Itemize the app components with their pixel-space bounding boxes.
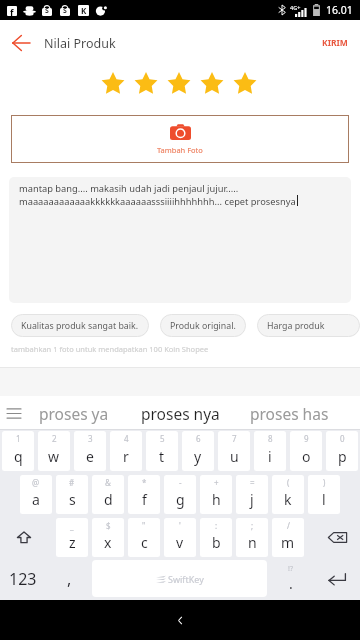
staticText: 5 [160,433,165,444]
staticText: c [141,533,148,552]
staticText: a [32,490,40,509]
button[interactable]: Rating star [96,70,129,96]
staticText: S [63,6,67,16]
staticText: 4G+ [290,4,301,11]
staticText: 8 [268,433,273,444]
staticText: h [212,490,221,509]
button[interactable]: ; [236,518,268,557]
button[interactable]: 2 [38,431,70,471]
staticText: 9 [304,433,309,444]
staticText: x [104,533,112,552]
button[interactable]: proses nya [141,396,220,430]
staticText: p [338,447,347,466]
staticText: KIRIM [322,37,348,49]
staticText: 4 [124,433,129,444]
button[interactable]: Keyboard menu [3,402,25,424]
staticText: Kualitas produk sangat baik. [21,320,139,332]
button[interactable]: Space [92,560,267,597]
staticText: k [284,490,292,509]
staticText: y [194,447,202,466]
button[interactable]: 9 [290,431,322,471]
staticText: l [322,490,326,509]
button[interactable]: Rating star [129,70,162,96]
button[interactable]: Enter [314,559,360,598]
button[interactable]: @ [20,475,52,514]
button[interactable]: 5 [146,431,178,471]
staticText: w [48,447,60,466]
button[interactable]: ) [308,475,340,514]
staticText: ' [179,520,181,531]
staticText: + [214,477,219,488]
staticText: maaaaaaaaaaaakkkkkkaaaaaasssiiiihhhhhhh.… [19,195,296,208]
button[interactable]: ( [272,475,304,514]
button[interactable]: - [164,475,196,514]
staticText: t [159,447,165,466]
button[interactable]: Back [166,606,194,634]
staticText: , [67,568,72,590]
button[interactable]: Rating star [195,70,228,96]
staticText: f [142,490,147,509]
button[interactable]: 3 [74,431,106,471]
staticText: b [212,533,221,552]
staticText: proses nya [141,403,220,424]
staticText: ( [287,477,290,488]
button[interactable]: proses has [249,396,329,430]
button[interactable]: : [200,518,232,557]
staticText: 2 [52,433,57,444]
staticText: g [176,490,185,509]
button[interactable]: 1 [2,431,34,471]
button[interactable]: = [236,475,268,514]
staticText: q [14,447,23,466]
button[interactable]: & [92,475,124,514]
staticText: 6 [196,433,201,444]
button[interactable]: Rating star [228,70,261,96]
button[interactable]: Shift [0,518,54,557]
staticText: 16.01 [326,3,353,17]
button[interactable]: ' [164,518,196,557]
staticText: @ [32,477,40,488]
button[interactable]: proses ya [36,396,111,430]
staticText: proses ya [39,403,109,424]
staticText: / [287,520,290,531]
button[interactable]: !? [267,559,314,598]
button[interactable]: Produk original. [160,314,246,337]
button[interactable]: 123 [0,559,46,598]
button[interactable]: " [128,518,160,557]
button[interactable]: Back [2,24,40,62]
button[interactable]: $ [92,518,124,557]
button[interactable]: _ [56,518,88,557]
staticText: = [250,477,255,488]
button[interactable]: / [272,518,304,557]
button[interactable]: 0 [326,431,358,471]
button[interactable]: Harga produk sangat b [257,314,360,337]
staticText: mantap bang.... makasih udah jadi penjau… [19,182,239,195]
button[interactable]: 8 [254,431,286,471]
staticText: Harga produk sangat b [267,320,350,332]
button[interactable]: 7 [218,431,250,471]
button[interactable]: # [56,475,88,514]
staticText: * [142,477,147,488]
staticText: . [289,574,293,593]
staticText: !? [288,564,293,574]
button[interactable]: Backspace [306,518,360,557]
staticText: # [69,477,75,488]
staticText: : [215,520,218,531]
button[interactable]: Tambah Foto [11,115,349,163]
button[interactable]: Kualitas produk sangat baik. [11,314,149,337]
staticText: & [105,477,111,488]
staticText: z [69,533,76,552]
button[interactable]: Rating star [162,70,195,96]
button[interactable]: + [200,475,232,514]
button[interactable]: * [128,475,160,514]
staticText: K [81,5,87,16]
button[interactable]: mantap bang.... makasih udah jadi penjau… [9,177,351,303]
button[interactable]: 4 [110,431,142,471]
staticText: u [230,447,239,466]
staticText: v [176,533,184,552]
staticText: 7 [232,433,237,444]
button[interactable]: 6 [182,431,214,471]
button[interactable]: KIRIM [316,31,354,55]
staticText: 3 [88,433,93,444]
button[interactable]: , [46,559,92,598]
staticText: Tambah Foto [157,145,203,155]
